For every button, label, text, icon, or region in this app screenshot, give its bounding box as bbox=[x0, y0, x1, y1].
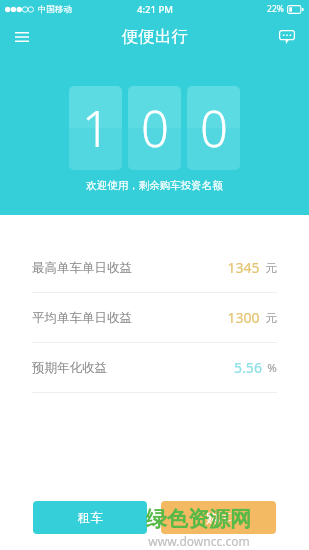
staticText: 1345 bbox=[227, 258, 260, 277]
button[interactable]: 最高单车单日收益 bbox=[0, 243, 309, 292]
button[interactable]: 购车 bbox=[161, 501, 276, 534]
staticText: 欢迎使用，剩余购车投资名额 bbox=[86, 179, 223, 192]
staticText: 0 bbox=[141, 95, 169, 162]
staticText: 1300 bbox=[227, 308, 260, 327]
staticText: 预期年化收益 bbox=[32, 360, 107, 376]
button[interactable]: 预期年化收益 bbox=[0, 343, 309, 392]
staticText: 元 bbox=[265, 261, 277, 275]
staticText: 5.56 bbox=[234, 358, 262, 377]
staticText: 元 bbox=[265, 311, 277, 325]
staticText: 22% bbox=[267, 3, 284, 15]
staticText: 4:21 PM bbox=[137, 3, 173, 16]
button[interactable]: 租车 bbox=[33, 501, 147, 534]
button[interactable]: Messages bbox=[265, 18, 309, 55]
staticText: 平均单车单日收益 bbox=[32, 310, 132, 326]
staticText: 购车 bbox=[206, 510, 231, 526]
staticText: 中国移动 bbox=[38, 4, 72, 15]
staticText: 最高单车单日收益 bbox=[32, 260, 132, 276]
staticText: % bbox=[267, 360, 277, 376]
staticText: 租车 bbox=[78, 510, 103, 526]
staticText: 绿色资源网 bbox=[146, 506, 251, 532]
button[interactable]: Menu bbox=[0, 18, 44, 55]
staticText: www.downcc.com bbox=[148, 533, 250, 549]
button[interactable]: 平均单车单日收益 bbox=[0, 293, 309, 342]
staticText: 0 bbox=[200, 95, 228, 162]
staticText: 1 bbox=[82, 95, 110, 162]
staticText: 便便出行 bbox=[122, 26, 188, 47]
